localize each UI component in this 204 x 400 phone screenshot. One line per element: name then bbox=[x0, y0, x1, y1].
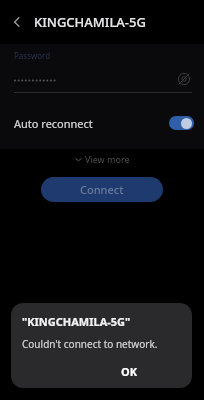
button[interactable]: Show password bbox=[0, 68, 204, 90]
staticText: "KINGCHAMILA-5G" bbox=[22, 314, 131, 329]
button[interactable]: View more bbox=[0, 149, 204, 169]
staticText: Couldn't connect to network. bbox=[22, 337, 158, 351]
button[interactable]: Auto reconnect bbox=[169, 116, 194, 130]
staticText: Auto reconnect bbox=[14, 116, 93, 131]
staticText: Connect bbox=[80, 182, 124, 197]
button[interactable]: Back bbox=[6, 11, 28, 33]
staticText: KINGCHAMILA-5G bbox=[34, 13, 146, 31]
button[interactable]: Connect bbox=[41, 177, 163, 202]
staticText: View more bbox=[85, 153, 130, 165]
button[interactable]: Auto reconnect bbox=[0, 109, 204, 137]
staticText: OK bbox=[121, 364, 138, 379]
button[interactable]: Show password bbox=[174, 69, 194, 89]
button[interactable]: OK bbox=[109, 361, 150, 382]
staticText: Password bbox=[14, 50, 51, 61]
